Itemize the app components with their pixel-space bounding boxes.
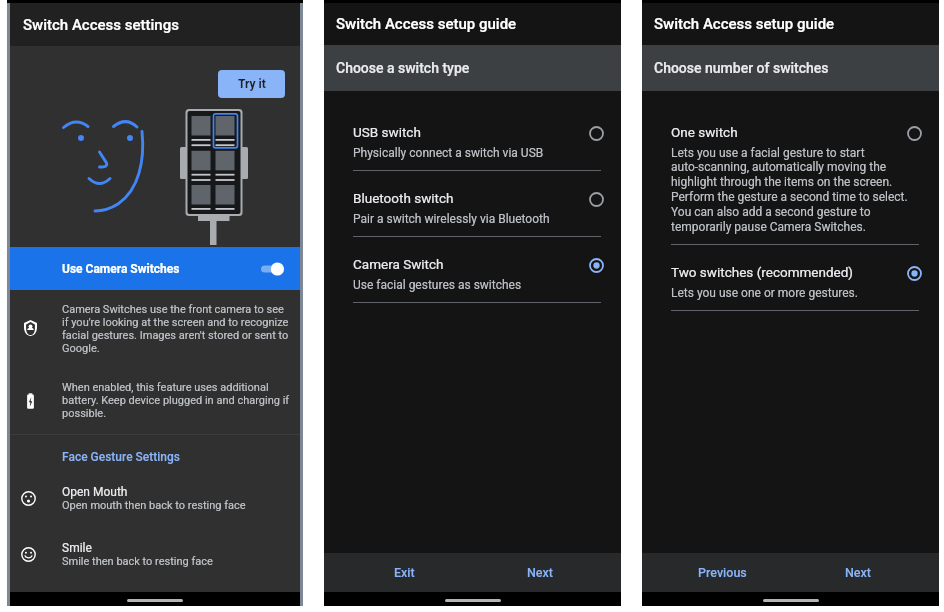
staticText: Camera Switches use the front camera to … bbox=[62, 303, 291, 355]
button[interactable]: Use Camera Switches bbox=[10, 247, 300, 290]
staticText: Switch Access setup guide bbox=[654, 15, 835, 33]
staticText: Switch Access setup guide bbox=[336, 15, 517, 33]
staticText: Smile bbox=[62, 541, 92, 555]
button[interactable]: Exit bbox=[341, 553, 468, 592]
other: Not selected bbox=[589, 192, 604, 207]
staticText: Try it bbox=[238, 77, 266, 91]
staticText: Pair a switch wirelessly via Bluetooth bbox=[353, 212, 550, 226]
staticText: Camera Switch bbox=[353, 256, 444, 272]
button[interactable]: One switch bbox=[642, 124, 939, 264]
button[interactable]: Two switches (recommended) bbox=[642, 264, 939, 330]
staticText: Next bbox=[845, 565, 872, 580]
staticText: Physically connect a switch via USB bbox=[353, 146, 544, 160]
button[interactable]: Previous bbox=[659, 553, 786, 592]
staticText: Smile then back to resting face bbox=[62, 555, 213, 568]
staticText: One switch bbox=[671, 124, 738, 140]
button[interactable]: USB switch bbox=[324, 124, 621, 190]
other: Camera switches toggle bbox=[261, 262, 284, 276]
other: Not selected bbox=[907, 126, 922, 141]
staticText: Open mouth then back to resting face bbox=[62, 499, 246, 512]
other: Not selected bbox=[589, 126, 604, 141]
staticText: Open Mouth bbox=[62, 485, 128, 499]
other: Selected bbox=[589, 258, 604, 273]
button[interactable]: Try it bbox=[218, 70, 285, 98]
staticText: Two switches (recommended) bbox=[671, 264, 854, 280]
staticText: Bluetooth switch bbox=[353, 190, 454, 206]
staticText: Use Camera Switches bbox=[62, 262, 180, 276]
staticText: Choose number of switches bbox=[654, 60, 829, 76]
button[interactable]: Smile bbox=[10, 541, 300, 568]
button[interactable]: Bluetooth switch bbox=[324, 190, 621, 256]
button[interactable]: Next bbox=[795, 553, 922, 592]
staticText: Exit bbox=[394, 565, 415, 580]
staticText: Next bbox=[527, 565, 554, 580]
button[interactable]: Next bbox=[477, 553, 604, 592]
button[interactable]: Open Mouth bbox=[10, 485, 300, 512]
other: Selected bbox=[907, 266, 922, 281]
staticText: Lets you use one or more gestures. bbox=[671, 286, 858, 300]
staticText: Previous bbox=[698, 565, 747, 580]
staticText: Use facial gestures as switches bbox=[353, 278, 522, 292]
button[interactable]: Camera Switch bbox=[324, 256, 621, 322]
staticText: USB switch bbox=[353, 124, 421, 140]
staticText: Switch Access settings bbox=[23, 16, 179, 34]
staticText: When enabled, this feature uses addition… bbox=[62, 381, 291, 420]
staticText: Choose a switch type bbox=[336, 60, 470, 76]
staticText: Face Gesture Settings bbox=[62, 450, 180, 464]
staticText: Lets you use a facial gesture to start a… bbox=[671, 146, 914, 234]
